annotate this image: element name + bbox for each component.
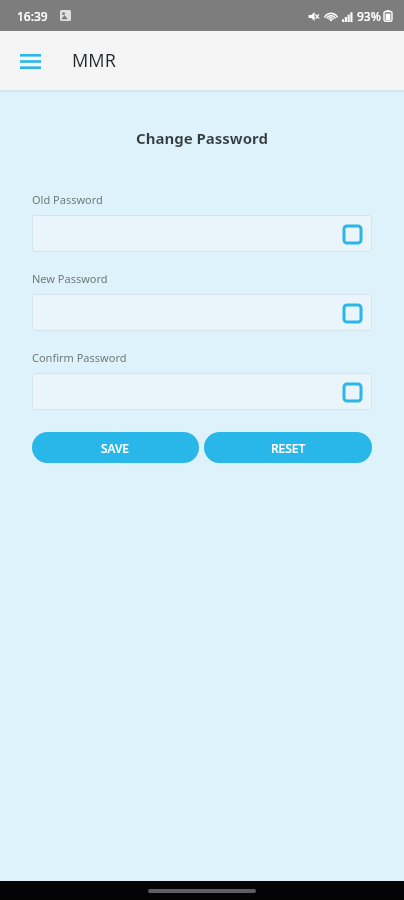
button[interactable]: Toggle password visibility [340, 222, 364, 246]
staticText: Change Password [0, 128, 404, 148]
staticText: RESET [271, 440, 306, 456]
button[interactable]: Toggle password visibility [340, 380, 364, 404]
button[interactable]: Toggle password visibility [32, 215, 372, 252]
button[interactable]: SAVE [32, 432, 199, 463]
staticText: MMR [72, 48, 116, 73]
button[interactable]: Toggle password visibility [340, 301, 364, 325]
staticText: 16:39 [17, 8, 48, 24]
staticText: Confirm Password [32, 350, 127, 365]
button[interactable]: Toggle password visibility [32, 373, 372, 410]
button[interactable]: Open navigation menu [8, 39, 52, 83]
staticText: 93% [357, 8, 381, 24]
staticText: Old Password [32, 192, 103, 207]
staticText: New Password [32, 271, 108, 286]
button[interactable]: Toggle password visibility [32, 294, 372, 331]
button[interactable]: RESET [204, 432, 372, 463]
staticText: SAVE [101, 440, 130, 456]
